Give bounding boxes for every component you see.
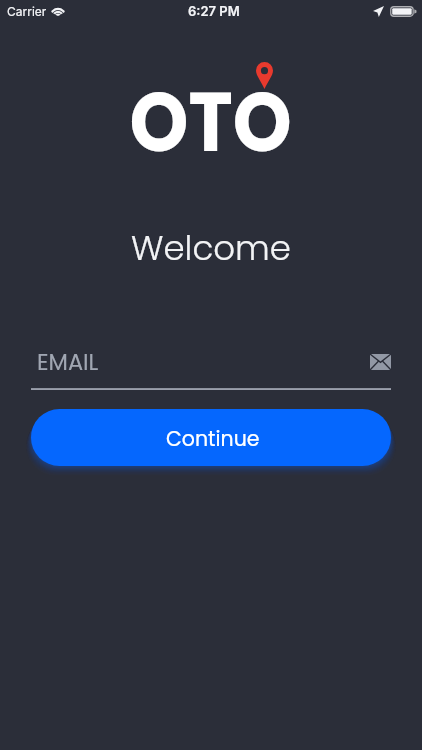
- other: Battery full: [390, 6, 417, 17]
- staticText: OTO: [130, 64, 292, 179]
- staticText: Welcome: [131, 224, 291, 272]
- other: Wi-Fi: [50, 5, 66, 16]
- button[interactable]: Continue: [31, 409, 391, 466]
- button[interactable]: EMAIL: [0, 340, 422, 392]
- other: Location pin: [256, 62, 273, 89]
- staticText: Continue: [166, 424, 260, 453]
- staticText: 6:27 PM: [188, 3, 240, 19]
- button[interactable]: Email: [370, 354, 391, 370]
- staticText: Carrier: [7, 4, 47, 19]
- staticText: EMAIL: [37, 346, 99, 377]
- other: Location services active: [373, 6, 384, 17]
